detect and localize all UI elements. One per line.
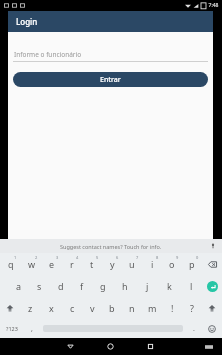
- staticText: w: [28, 258, 36, 270]
- staticText: Informe o funcionário: [14, 50, 82, 59]
- button[interactable]: f: [71, 275, 92, 297]
- staticText: k: [167, 280, 172, 292]
- staticText: m: [148, 302, 157, 314]
- button[interactable]: Backspace: [202, 253, 222, 275]
- button[interactable]: 2: [21, 253, 42, 275]
- button[interactable]: v: [82, 297, 102, 319]
- staticText: n: [129, 302, 135, 314]
- button[interactable]: Informe o funcionário: [13, 46, 208, 62]
- staticText: Login: [16, 16, 38, 27]
- button[interactable]: Shift: [202, 297, 222, 319]
- staticText: t: [90, 258, 94, 270]
- staticText: e: [49, 258, 55, 270]
- button[interactable]: !: [162, 297, 182, 319]
- button[interactable]: 0: [182, 253, 202, 275]
- button[interactable]: 3: [42, 253, 62, 275]
- button[interactable]: Back: [50, 338, 90, 355]
- staticText: 1: [14, 255, 17, 260]
- staticText: 6: [116, 255, 119, 260]
- button[interactable]: ?: [182, 297, 202, 319]
- button[interactable]: a: [8, 275, 29, 297]
- button[interactable]: s: [29, 275, 50, 297]
- staticText: 3: [56, 255, 59, 260]
- staticText: l: [190, 280, 193, 292]
- button[interactable]: 9: [162, 253, 182, 275]
- button[interactable]: m: [142, 297, 162, 319]
- staticText: i: [151, 258, 154, 270]
- staticText: !: [171, 302, 174, 314]
- button[interactable]: Home: [90, 338, 130, 355]
- staticText: b: [109, 302, 115, 314]
- staticText: 7:48: [208, 2, 219, 9]
- button[interactable]: k: [158, 275, 180, 297]
- staticText: f: [80, 280, 84, 292]
- staticText: z: [28, 302, 33, 314]
- button[interactable]: ,: [24, 319, 40, 338]
- button[interactable]: 4: [62, 253, 82, 275]
- button[interactable]: c: [62, 297, 82, 319]
- staticText: Entrar: [100, 75, 121, 85]
- staticText: 8: [156, 255, 159, 260]
- button[interactable]: Switch keyboard: [198, 338, 220, 355]
- staticText: 7: [136, 255, 139, 260]
- staticText: u: [129, 258, 135, 270]
- button[interactable]: 5: [82, 253, 102, 275]
- staticText: ?123: [6, 325, 18, 332]
- button[interactable]: ?123: [0, 319, 24, 338]
- staticText: q: [8, 258, 14, 270]
- button[interactable]: j: [136, 275, 158, 297]
- staticText: s: [37, 280, 42, 292]
- button[interactable]: Enter: [202, 275, 222, 297]
- staticText: 0: [196, 255, 199, 260]
- staticText: 9: [176, 255, 179, 260]
- staticText: d: [58, 280, 64, 292]
- button[interactable]: Entrar: [13, 72, 208, 87]
- button[interactable]: z: [20, 297, 41, 319]
- staticText: ,: [31, 324, 33, 334]
- button[interactable]: d: [50, 275, 71, 297]
- button[interactable]: Shift: [0, 297, 20, 319]
- staticText: r: [70, 258, 74, 270]
- button[interactable]: Emoji: [202, 319, 222, 338]
- button[interactable]: n: [122, 297, 142, 319]
- staticText: ?: [190, 302, 194, 314]
- button[interactable]: b: [102, 297, 122, 319]
- button[interactable]: .: [186, 319, 202, 338]
- staticText: j: [146, 280, 149, 292]
- button[interactable]: l: [180, 275, 202, 297]
- staticText: Suggest contact names? Touch for info.: [60, 243, 162, 250]
- staticText: o: [169, 258, 175, 270]
- staticText: v: [90, 302, 95, 314]
- button[interactable]: Recents: [130, 338, 170, 355]
- staticText: 2: [35, 255, 38, 260]
- staticText: h: [122, 280, 128, 292]
- staticText: .: [193, 324, 195, 334]
- button[interactable]: 6: [102, 253, 122, 275]
- staticText: 5: [96, 255, 99, 260]
- staticText: x: [49, 302, 54, 314]
- button[interactable]: 1: [0, 253, 21, 275]
- staticText: a: [16, 280, 22, 292]
- button[interactable]: h: [114, 275, 136, 297]
- other: Voice input: [210, 243, 216, 249]
- staticText: 4: [76, 255, 79, 260]
- button[interactable]: 8: [142, 253, 162, 275]
- button[interactable]: 7: [122, 253, 142, 275]
- staticText: p: [189, 258, 195, 270]
- button[interactable]: g: [92, 275, 114, 297]
- staticText: g: [100, 280, 106, 292]
- button[interactable]: Suggest contact names? Touch for info.: [0, 239, 222, 253]
- button[interactable]: x: [41, 297, 62, 319]
- staticText: c: [70, 302, 75, 314]
- staticText: y: [110, 258, 115, 270]
